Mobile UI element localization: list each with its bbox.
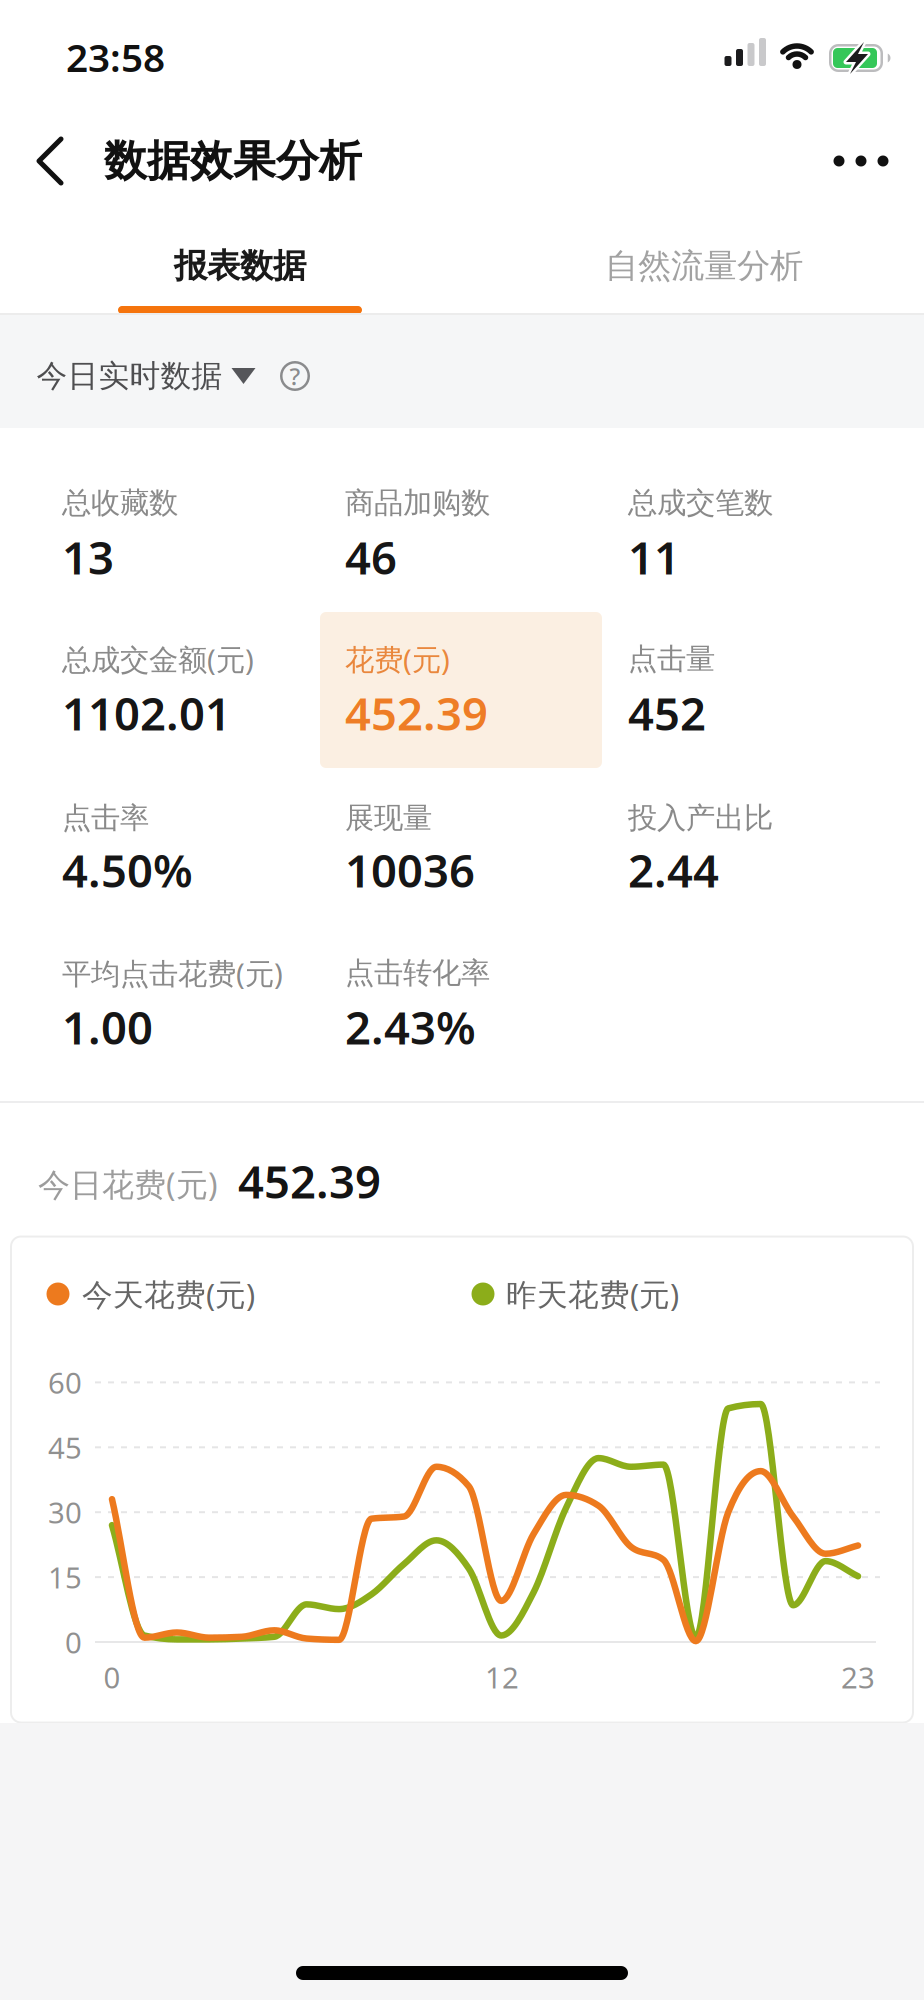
staticText: 平均点击花费(元) <box>62 953 283 992</box>
staticText: 30 <box>48 1493 82 1532</box>
button[interactable]: 自然流量分析 <box>554 226 854 306</box>
staticText: 23:58 <box>66 31 165 83</box>
button[interactable]: 帮助 <box>272 353 318 399</box>
staticText: 452.39 <box>238 1151 381 1211</box>
staticText: 今日实时数据 <box>36 357 222 395</box>
button[interactable]: 报表数据 <box>118 226 362 306</box>
button[interactable]: 今日实时数据 <box>36 341 255 411</box>
staticText: 10036 <box>345 840 475 900</box>
staticText: 452.39 <box>345 683 488 743</box>
staticText: 0 <box>103 1657 120 1696</box>
staticText: 12 <box>485 1657 519 1696</box>
staticText: 1102.01 <box>62 683 231 743</box>
staticText: 总收藏数 <box>62 485 178 521</box>
staticText: 11 <box>628 527 680 587</box>
staticText: 投入产出比 <box>628 800 773 836</box>
staticText: 452 <box>628 683 706 743</box>
staticText: 46 <box>345 527 397 587</box>
staticText: 商品加购数 <box>345 485 490 521</box>
staticText: 今天花费(元) <box>82 1274 255 1314</box>
staticText: 昨天花费(元) <box>506 1274 679 1314</box>
staticText: 23 <box>841 1657 875 1696</box>
staticText: 今日花费(元) <box>38 1163 218 1205</box>
staticText: 点击转化率 <box>345 955 490 991</box>
staticText: 2.44 <box>628 840 719 900</box>
button[interactable]: 更多 <box>816 131 906 191</box>
staticText: 45 <box>48 1428 82 1467</box>
staticText: 点击量 <box>628 641 715 677</box>
staticText: 数据效果分析 <box>104 135 362 187</box>
staticText: 花费(元) <box>345 639 450 678</box>
staticText: 4.50% <box>62 840 193 900</box>
staticText: 0 <box>65 1622 82 1661</box>
staticText: 60 <box>48 1363 82 1402</box>
staticText: 13 <box>62 527 114 587</box>
staticText: 2.43% <box>345 997 476 1057</box>
staticText: 总成交笔数 <box>628 485 773 521</box>
staticText: 1.00 <box>62 997 153 1057</box>
staticText: 自然流量分析 <box>605 245 803 286</box>
staticText: 点击率 <box>62 800 149 836</box>
button[interactable]: 返回 <box>22 133 78 189</box>
staticText: 报表数据 <box>174 245 306 286</box>
staticText: ? <box>289 360 300 392</box>
staticText: 15 <box>48 1558 82 1597</box>
staticText: 展现量 <box>345 800 432 836</box>
staticText: 总成交金额(元) <box>62 639 254 678</box>
